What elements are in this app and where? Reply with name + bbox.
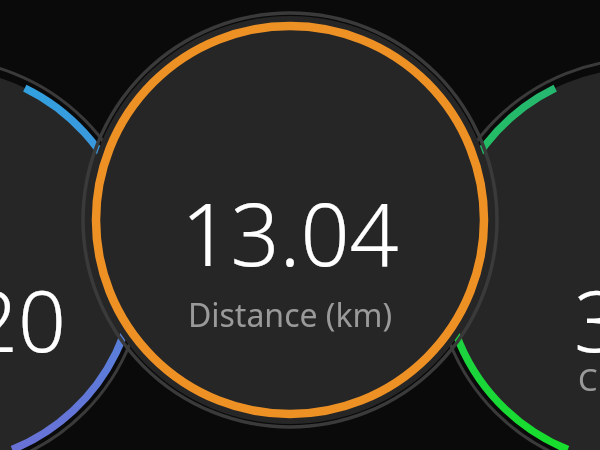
button[interactable]: 13.04 (0, 0, 600, 450)
button[interactable]: Next metric (0, 0, 600, 450)
staticText: 20 (0, 262, 66, 376)
staticText: 13.04 (90, 174, 490, 291)
staticText: Distance (km) (90, 293, 490, 337)
button[interactable]: Previous metric (0, 0, 600, 450)
staticText: C (578, 358, 598, 400)
staticText: 3 (574, 262, 600, 376)
